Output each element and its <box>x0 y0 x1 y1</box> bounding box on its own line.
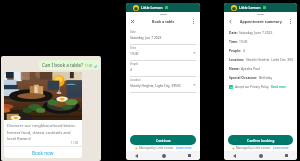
staticText: Managed by Little Lemon. <box>139 146 175 150</box>
staticText: 19:30 <box>130 51 193 55</box>
button[interactable]: More options <box>190 18 197 25</box>
button[interactable]: Home <box>159 151 168 160</box>
staticText: Time <box>130 46 136 50</box>
button[interactable]: Accept our Privacy Policy. <box>229 85 287 89</box>
button[interactable]: Back <box>230 151 239 160</box>
button[interactable]: Back <box>132 151 141 160</box>
staticText: Time: <box>229 39 238 43</box>
staticText: Learn more <box>176 146 192 150</box>
staticText: 11:00 <box>85 64 93 68</box>
button[interactable]: Home <box>256 151 265 160</box>
staticText: Ayesha Paul <box>241 66 260 70</box>
staticText: Learn more <box>273 146 289 150</box>
staticText: Birthday <box>259 75 273 79</box>
staticText: Shorily Heights, Light City, 3931 <box>246 57 293 61</box>
button[interactable]: Back <box>227 18 234 25</box>
button[interactable]: More options <box>287 18 294 25</box>
button[interactable]: Continue <box>130 135 196 145</box>
button[interactable]: Book now <box>4 147 82 158</box>
staticText: Can I book a table? <box>42 62 83 68</box>
staticText: Appointment summary <box>240 19 282 24</box>
staticText: Read more <box>271 85 287 89</box>
staticText: People <box>130 62 139 66</box>
staticText: Little Lemon <box>141 5 163 10</box>
button[interactable]: Recent apps <box>185 151 194 160</box>
staticText: Saturday, June 7 2023 <box>239 30 273 34</box>
staticText: Accept our Privacy Policy. <box>235 85 270 89</box>
staticText: Date <box>130 30 136 34</box>
staticText: Little Lemon <box>239 5 261 10</box>
staticText: 4 <box>243 48 245 52</box>
staticText: 19:30 <box>239 39 248 43</box>
staticText: Continue <box>156 138 171 143</box>
staticText: Shorily Heights, Light City, 39503 <box>130 83 193 87</box>
staticText: Special Occasion: <box>229 75 258 79</box>
button[interactable]: Close <box>129 18 136 25</box>
staticText: Discover our neighbourhood bistro: hones… <box>7 123 76 141</box>
staticText: Saturday, Jun 7 2023 <box>130 35 196 39</box>
button[interactable]: Confirm booking <box>228 135 293 145</box>
staticText: 4 <box>130 67 196 71</box>
staticText: Location <box>130 78 141 82</box>
staticText: Confirm booking <box>247 138 275 143</box>
staticText: Book now <box>32 150 54 156</box>
staticText: 11:00 <box>71 141 79 145</box>
staticText: Book a table <box>152 19 175 24</box>
staticText: Name: <box>229 66 240 70</box>
staticText: Location: <box>229 57 245 61</box>
staticText: People: <box>229 48 242 52</box>
button[interactable]: Recent apps <box>282 151 291 160</box>
staticText: Managed by Little Lemon. <box>236 146 272 150</box>
staticText: Date: <box>229 30 238 34</box>
